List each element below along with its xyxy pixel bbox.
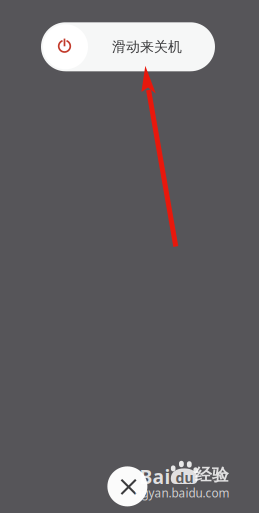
button[interactable]: Cancel bbox=[105, 464, 149, 508]
staticText: 滑动来关机 bbox=[112, 38, 182, 56]
staticText: 经验 bbox=[195, 464, 229, 485]
staticText: Bai bbox=[139, 463, 170, 490]
staticText: du bbox=[175, 468, 193, 487]
button[interactable]: 滑动来关机 bbox=[41, 22, 215, 71]
staticText: ngyan.baidu.com bbox=[134, 485, 229, 501]
